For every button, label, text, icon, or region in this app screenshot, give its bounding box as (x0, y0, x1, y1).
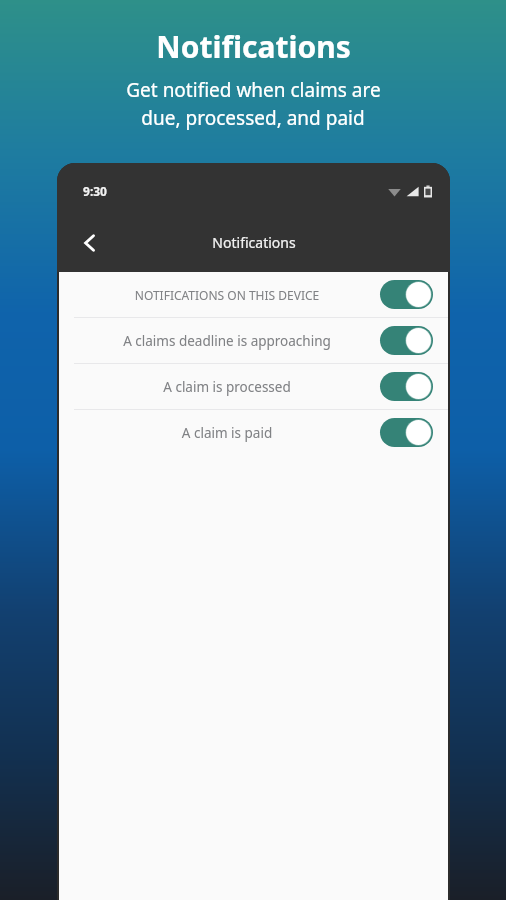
staticText: A claim is processed (74, 378, 380, 396)
staticText: 9:30 (83, 183, 107, 199)
button[interactable]: Toggle (380, 280, 433, 309)
button[interactable]: Back (67, 220, 113, 266)
staticText: A claims deadline is approaching (74, 332, 380, 350)
button[interactable]: Toggle (380, 372, 433, 401)
button[interactable]: Toggle (380, 326, 433, 355)
button[interactable]: A claim is paid (59, 410, 448, 455)
button[interactable]: A claims deadline is approaching (59, 318, 448, 363)
staticText: due, processed, and paid (141, 105, 365, 131)
staticText: Notifications (212, 233, 296, 252)
button[interactable]: NOTIFICATIONS ON THIS DEVICE (59, 272, 448, 317)
button[interactable]: A claim is processed (59, 364, 448, 409)
staticText: A claim is paid (74, 424, 380, 442)
staticText: NOTIFICATIONS ON THIS DEVICE (74, 287, 380, 303)
staticText: Get notified when claims are (126, 77, 381, 103)
staticText: Notifications (156, 26, 351, 67)
button[interactable]: Toggle (380, 418, 433, 447)
